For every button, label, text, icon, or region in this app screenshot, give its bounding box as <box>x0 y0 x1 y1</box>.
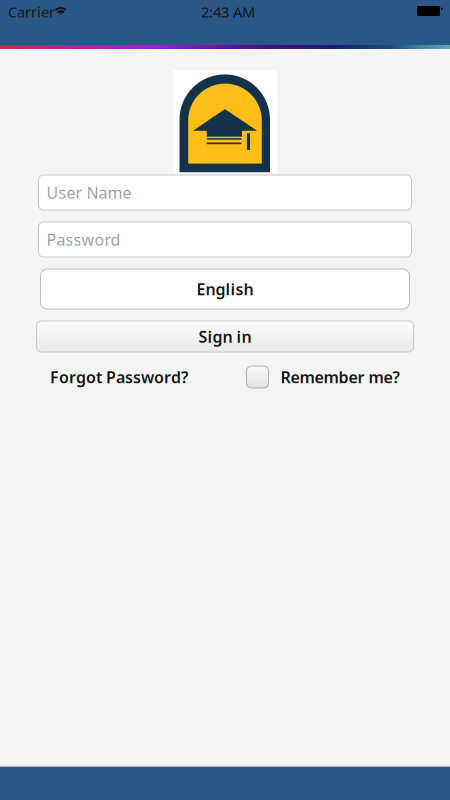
staticText: English <box>196 278 253 300</box>
button[interactable]: English <box>40 269 409 309</box>
button[interactable]: Remember me? <box>246 366 399 388</box>
staticText: Password <box>46 229 120 250</box>
staticText: 2:43 AM <box>201 2 255 21</box>
staticText: Remember me? <box>280 366 399 388</box>
staticText: Sign in <box>198 326 251 347</box>
staticText: Forgot Password? <box>50 366 188 388</box>
staticText: Carrier <box>8 2 55 21</box>
button[interactable]: Sign in <box>36 321 413 352</box>
button[interactable]: Forgot Password? <box>50 366 220 388</box>
staticText: User Name <box>46 182 131 203</box>
